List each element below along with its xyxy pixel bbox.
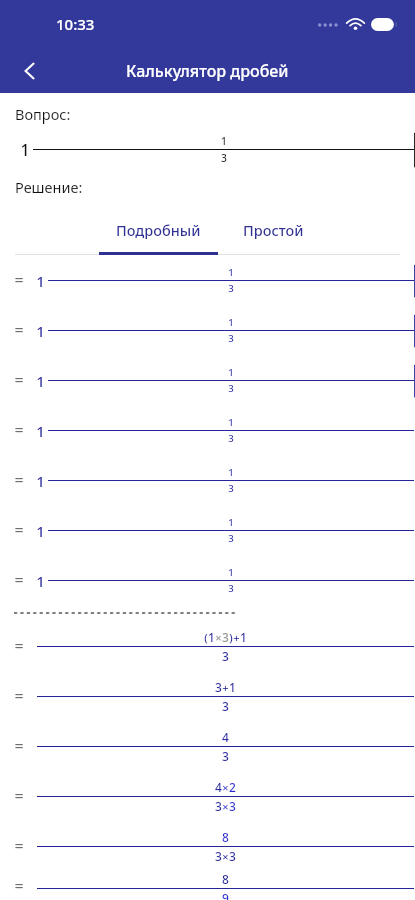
staticText: 4 [215, 779, 222, 795]
staticText: 1 [240, 629, 247, 645]
staticText: 1 [228, 416, 234, 429]
staticText: 8 [222, 829, 229, 845]
staticText: 3 [228, 482, 234, 495]
staticText: 1 [36, 571, 45, 591]
staticText: 1 [36, 521, 45, 541]
staticText: ) [229, 630, 233, 645]
staticText: 1 [228, 516, 234, 529]
staticText: ( [204, 630, 208, 645]
staticText: + [233, 630, 240, 645]
staticText: = [14, 269, 24, 291]
button[interactable]: Back [8, 49, 52, 93]
staticText: 1 [36, 271, 45, 291]
staticText: = [14, 875, 24, 897]
staticText: 3 [215, 679, 222, 695]
staticText: 1 [228, 316, 234, 329]
staticText: 1 [36, 421, 45, 441]
staticText: 1 [36, 321, 45, 341]
staticText: 3 [228, 532, 234, 545]
staticText: 3 [228, 332, 234, 345]
staticText: 10:33 [56, 14, 95, 34]
staticText: × [215, 630, 222, 645]
staticText: 1 [228, 466, 234, 479]
staticText: 3 [229, 798, 236, 814]
staticText: 3 [222, 629, 229, 645]
staticText: = [14, 319, 24, 341]
staticText: 9 [222, 890, 229, 900]
staticText: 3 [222, 648, 229, 664]
staticText: 1 [228, 566, 234, 579]
staticText: 3 [229, 848, 236, 864]
staticText: = [14, 569, 24, 591]
staticText: × [222, 780, 229, 795]
staticText: Простой [243, 220, 304, 240]
staticText: = [14, 785, 24, 807]
staticText: 3 [215, 798, 222, 814]
button[interactable]: Подробный [99, 211, 218, 255]
staticText: = [14, 419, 24, 441]
staticText: + [222, 680, 229, 695]
staticText: = [14, 369, 24, 391]
staticText: 1 [228, 366, 234, 379]
staticText: 1 [36, 471, 45, 491]
staticText: = [14, 635, 24, 657]
button[interactable]: Простой [218, 211, 328, 255]
staticText: Подробный [116, 220, 201, 240]
staticText: Решение: [15, 177, 83, 197]
staticText: 4 [222, 729, 229, 745]
staticText: 1 [229, 679, 236, 695]
staticText: = [14, 685, 24, 707]
staticText: = [14, 469, 24, 491]
staticText: 3 [222, 698, 229, 714]
staticText: 3 [228, 382, 234, 395]
staticText: = [14, 519, 24, 541]
staticText: Вопрос: [15, 104, 71, 124]
staticText: 3 [215, 848, 222, 864]
staticText: 1 [208, 629, 215, 645]
staticText: × [222, 799, 229, 814]
staticText: 3 [222, 748, 229, 764]
staticText: 1 [221, 134, 227, 148]
staticText: 3 [228, 282, 234, 295]
staticText: Калькулятор дробей [126, 60, 289, 82]
staticText: = [14, 735, 24, 757]
staticText: × [222, 849, 229, 864]
staticText: 1 [20, 139, 30, 161]
staticText: 1 [228, 266, 234, 279]
staticText: 3 [228, 432, 234, 445]
staticText: 3 [228, 582, 234, 595]
staticText: 3 [221, 151, 227, 165]
staticText: 8 [222, 871, 229, 887]
staticText: = [14, 835, 24, 857]
staticText: 2 [229, 779, 236, 795]
staticText: 1 [36, 371, 45, 391]
